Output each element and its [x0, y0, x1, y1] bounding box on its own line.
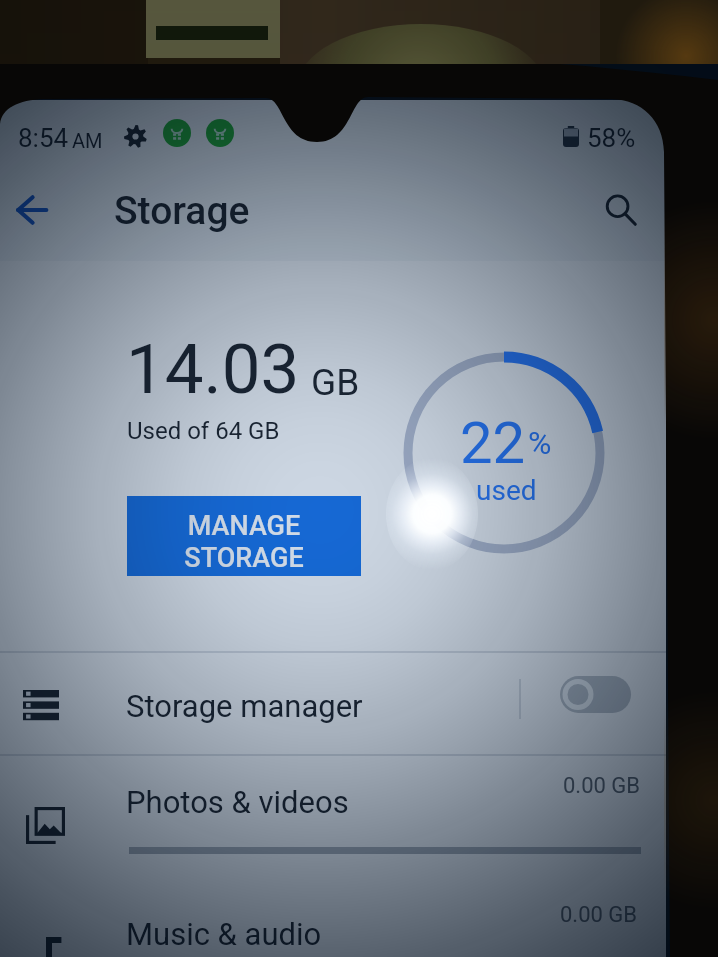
button[interactable]: Back — [3, 181, 61, 239]
button[interactable]: Photos & videos — [0, 756, 666, 884]
staticText: 8:54 — [18, 123, 69, 153]
staticText: % — [528, 424, 552, 462]
button[interactable]: Music & audio — [0, 884, 666, 957]
staticText: 22 — [460, 409, 526, 477]
staticText: 0.00 GB — [563, 773, 641, 799]
staticText: Used of 64 GB — [127, 417, 280, 445]
button[interactable]: Storage manager — [0, 653, 666, 754]
button[interactable]: Storage manager toggle — [560, 676, 631, 713]
button[interactable]: Search — [593, 182, 649, 238]
staticText: 58% — [587, 123, 636, 153]
button[interactable]: MANAGE STORAGE — [127, 496, 361, 576]
staticText: MANAGE STORAGE — [184, 510, 304, 573]
staticText: used — [476, 474, 537, 507]
staticText: Storage manager — [126, 688, 363, 724]
staticText: Photos & videos — [126, 784, 349, 820]
staticText: GB — [311, 361, 360, 404]
staticText: Storage — [114, 188, 250, 234]
staticText: Music & audio — [126, 916, 322, 952]
staticText: AM — [72, 129, 103, 152]
staticText: 14.03 — [126, 329, 300, 410]
staticText: 0.00 GB — [560, 902, 638, 928]
